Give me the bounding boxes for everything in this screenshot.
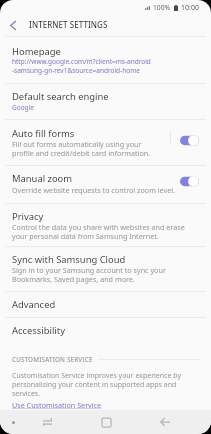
staticText: Sync with Samsung Cloud	[12, 253, 126, 266]
button[interactable]: Accessibility	[0, 318, 211, 343]
staticText: INTERNET SETTINGS	[29, 19, 108, 30]
button[interactable]: Manual zoom	[0, 166, 211, 203]
button[interactable]: Recent apps	[29, 410, 65, 434]
button[interactable]: Toggle	[168, 166, 211, 203]
button[interactable]: Navigate up	[0, 15, 26, 36]
staticText: Customisation Service improves your expe…	[12, 371, 182, 398]
staticText: http://www.google.com/m?client=ms-androi…	[12, 57, 151, 75]
staticText: Privacy	[12, 210, 44, 223]
staticText: Advanced	[12, 298, 56, 311]
button[interactable]: Back	[147, 410, 183, 434]
staticText: Sign in to your Samsung account to sync …	[12, 265, 166, 284]
staticText: CUSTOMISATION SERVICE	[12, 355, 93, 364]
button[interactable]: Homepage	[0, 37, 211, 83]
staticText: Google	[12, 103, 34, 112]
button[interactable]: Hide navigation bar	[5, 410, 22, 434]
staticText: Control the data you share with websites…	[12, 222, 185, 241]
button[interactable]: Toggle	[168, 120, 211, 165]
button[interactable]: Advanced	[0, 292, 211, 317]
button[interactable]: Default search engine	[0, 84, 211, 119]
button[interactable]: Privacy	[0, 204, 211, 246]
button[interactable]: Sync with Samsung Cloud	[0, 247, 211, 291]
staticText: Accessibility	[12, 324, 65, 337]
button[interactable]: Home	[88, 410, 124, 434]
staticText: 100%	[153, 3, 171, 12]
staticText: Manual zoom	[12, 172, 73, 185]
staticText: Homepage	[12, 45, 61, 58]
button[interactable]: Auto fill forms	[0, 120, 211, 165]
staticText: Override website requests to control zoo…	[12, 185, 175, 195]
button[interactable]: Use Customisation Service	[12, 400, 102, 410]
staticText: Default search engine	[12, 90, 109, 103]
staticText: 10:00	[181, 3, 199, 13]
staticText: Fill out forms automatically using your …	[12, 139, 151, 158]
staticText: Auto fill forms	[12, 127, 75, 140]
